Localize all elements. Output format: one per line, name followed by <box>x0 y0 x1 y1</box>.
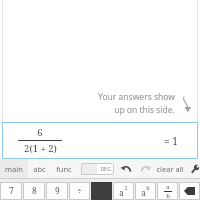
button[interactable]: Settings <box>191 162 200 175</box>
staticText: abc <box>33 164 46 174</box>
staticText: 6 <box>37 126 43 139</box>
staticText: clear all <box>156 164 184 174</box>
button[interactable]: 7 <box>0 182 22 200</box>
button[interactable]: main <box>0 159 28 178</box>
staticText: DEG <box>100 166 111 173</box>
staticText: a <box>141 187 146 198</box>
staticText: 2(1 + 2) <box>24 142 57 155</box>
staticText: func <box>56 164 72 174</box>
staticText: 8 <box>32 185 37 197</box>
button[interactable]: func <box>51 159 77 178</box>
button[interactable]: 8 <box>23 182 45 200</box>
staticText: 7 <box>9 185 14 197</box>
other: Points to answers <box>180 95 194 113</box>
button[interactable]: a to the power of 2 <box>113 182 134 200</box>
staticText: 9 <box>55 185 60 197</box>
staticText: a <box>166 183 170 191</box>
button[interactable]: Undo <box>119 162 133 176</box>
staticText: up on this side. <box>114 104 175 116</box>
button[interactable]: clear all <box>153 161 187 177</box>
button[interactable]: abc <box>28 159 51 178</box>
button[interactable]: Toggle degrees or radians <box>81 163 114 175</box>
staticText: b <box>166 192 170 200</box>
staticText: main <box>5 164 23 174</box>
button[interactable]: 9 <box>46 182 68 200</box>
button[interactable]: ÷ <box>69 182 90 200</box>
button[interactable]: Redo <box>139 162 153 176</box>
button[interactable]: Backspace <box>179 182 200 200</box>
staticText: ÷ <box>77 185 82 197</box>
staticText: 2 <box>124 184 128 191</box>
staticText: b <box>146 184 150 191</box>
staticText: a <box>119 187 124 198</box>
staticText: Your answers show <box>98 91 175 103</box>
button[interactable]: Fraction <box>157 182 178 200</box>
button[interactable]: a to the power of b <box>135 182 156 200</box>
staticText: = 1 <box>164 134 178 148</box>
